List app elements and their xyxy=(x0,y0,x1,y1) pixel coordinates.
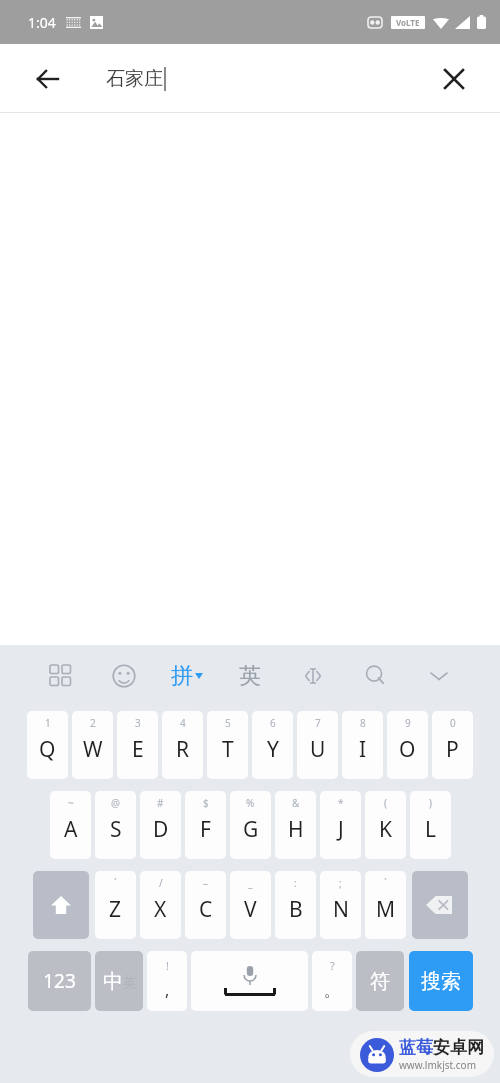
staticText: Z xyxy=(109,895,122,924)
button[interactable]: 1 xyxy=(27,711,68,779)
button[interactable]: 8 xyxy=(342,711,383,779)
staticText: _ xyxy=(248,876,253,890)
button[interactable]: 6 xyxy=(252,711,293,779)
button[interactable]: 7 xyxy=(297,711,338,779)
button[interactable]: % xyxy=(230,791,271,859)
button[interactable]: & xyxy=(275,791,316,859)
staticText: ` xyxy=(384,876,387,890)
staticText: % xyxy=(246,796,255,810)
button[interactable]: 搜索 xyxy=(409,951,473,1011)
staticText: 石家庄 xyxy=(106,67,163,91)
button[interactable]: ; xyxy=(320,871,361,939)
staticText: 9 xyxy=(405,716,411,730)
staticText: C xyxy=(199,895,213,924)
button[interactable]: Move cursor xyxy=(281,645,344,707)
staticText: : xyxy=(294,876,297,890)
staticText: – xyxy=(203,876,208,890)
button[interactable]: 4 xyxy=(162,711,203,779)
staticText: 7 xyxy=(315,716,321,730)
staticText: 搜索 xyxy=(421,969,461,994)
staticText: A xyxy=(64,815,78,844)
staticText: L xyxy=(425,815,437,844)
staticText: ´ xyxy=(114,876,117,890)
staticText: 0 xyxy=(450,716,456,730)
staticText: 6 xyxy=(270,716,276,730)
button[interactable]: ) xyxy=(410,791,451,859)
staticText: ; xyxy=(339,876,342,890)
staticText: N xyxy=(333,895,349,924)
staticText: ! xyxy=(166,958,169,973)
button[interactable]: Emoji xyxy=(92,645,155,707)
button[interactable]: # xyxy=(140,791,181,859)
button[interactable]: Hide keyboard xyxy=(407,645,470,707)
staticText: 中 xyxy=(103,969,123,994)
staticText: O xyxy=(399,735,416,764)
button[interactable]: – xyxy=(185,871,226,939)
button[interactable]: * xyxy=(320,791,361,859)
button[interactable]: Search xyxy=(344,645,407,707)
button[interactable]: 符 xyxy=(356,951,404,1011)
staticText: 1:04 xyxy=(28,13,56,32)
button[interactable]: ` xyxy=(365,871,406,939)
button[interactable]: Clear xyxy=(432,57,476,101)
staticText: P xyxy=(446,735,459,764)
button[interactable]: ? xyxy=(312,951,352,1011)
staticText: 安卓网 xyxy=(433,1037,484,1058)
staticText: , xyxy=(165,979,170,1001)
button[interactable]: : xyxy=(275,871,316,939)
button[interactable]: Backspace xyxy=(412,871,468,939)
button[interactable]: / xyxy=(140,871,181,939)
staticText: R xyxy=(176,735,190,764)
staticText: 5 xyxy=(225,716,231,730)
button[interactable]: 9 xyxy=(387,711,428,779)
staticText: ) xyxy=(429,796,432,810)
button[interactable]: 5 xyxy=(207,711,248,779)
staticText: 英 xyxy=(239,662,261,690)
staticText: Y xyxy=(267,735,279,764)
button[interactable]: 中 xyxy=(95,951,143,1011)
staticText: F xyxy=(200,815,211,844)
button[interactable]: _ xyxy=(230,871,271,939)
button[interactable]: 2 xyxy=(72,711,113,779)
button[interactable]: 123 xyxy=(28,951,91,1011)
staticText: V xyxy=(244,895,257,924)
staticText: X xyxy=(154,895,167,924)
button[interactable]: ~ xyxy=(50,791,91,859)
staticText: www.lmkjst.com xyxy=(399,1058,476,1072)
button[interactable]: 0 xyxy=(432,711,473,779)
button[interactable]: ´ xyxy=(95,871,136,939)
staticText: / xyxy=(159,876,163,890)
staticText: M xyxy=(376,895,396,924)
button[interactable]: Space / voice input xyxy=(191,951,308,1011)
staticText: B xyxy=(289,895,303,924)
staticText: S xyxy=(110,815,122,844)
staticText: 拼 xyxy=(171,662,193,690)
button[interactable]: @ xyxy=(95,791,136,859)
staticText: 4 xyxy=(180,716,186,730)
staticText: ( xyxy=(384,796,387,810)
staticText: G xyxy=(243,815,259,844)
button[interactable]: Shift xyxy=(33,871,89,939)
button[interactable]: Back xyxy=(26,57,70,101)
button[interactable]: 3 xyxy=(117,711,158,779)
staticText: 蓝莓 xyxy=(399,1037,433,1058)
staticText: 符 xyxy=(370,969,390,994)
staticText: 3 xyxy=(135,716,141,730)
button[interactable]: 拼 xyxy=(155,645,218,707)
button[interactable]: ! xyxy=(147,951,187,1011)
staticText: & xyxy=(292,796,300,810)
staticText: I xyxy=(359,735,367,764)
button[interactable]: Keyboard layouts xyxy=(30,645,92,707)
staticText: E xyxy=(132,735,144,764)
staticText: ? xyxy=(330,958,335,973)
staticText: # xyxy=(157,796,164,810)
staticText: J xyxy=(338,815,344,844)
staticText: ~ xyxy=(68,796,74,810)
staticText: Q xyxy=(39,735,56,764)
button[interactable]: 英 xyxy=(218,645,281,707)
button[interactable]: $ xyxy=(185,791,226,859)
button[interactable]: ( xyxy=(365,791,406,859)
staticText: U xyxy=(310,735,326,764)
staticText: H xyxy=(288,815,304,844)
staticText: @ xyxy=(111,796,120,810)
